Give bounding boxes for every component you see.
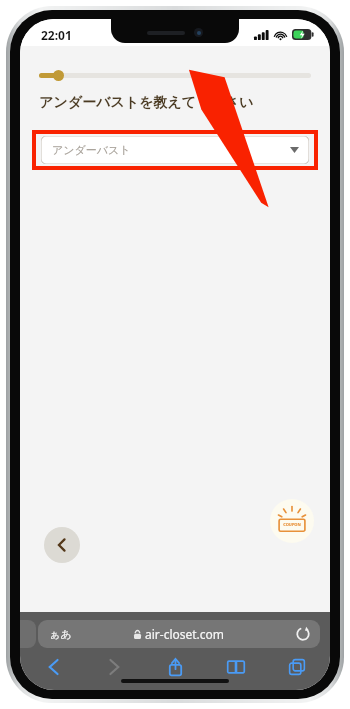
staticText: アンダーバストを教えてください <box>39 94 254 112</box>
button[interactable]: クーポン <box>270 499 314 543</box>
staticText: 22:01 <box>41 27 72 43</box>
staticText: COUPON <box>283 522 301 527</box>
button[interactable]: 進む <box>93 654 135 680</box>
button[interactable]: 共有 <box>154 654 196 680</box>
button[interactable]: 戻る <box>44 527 80 563</box>
button[interactable]: アンダーバスト <box>41 136 309 164</box>
button[interactable]: 再読み込み <box>295 626 311 642</box>
staticText: air-closet.com <box>145 626 225 642</box>
button[interactable]: ブックマーク <box>215 654 257 680</box>
staticText: アンダーバスト <box>52 143 131 157</box>
button[interactable]: 戻る <box>32 654 74 680</box>
button[interactable]: ぁあ <box>38 620 320 648</box>
button[interactable]: タブ <box>276 654 318 680</box>
staticText: ぁあ <box>49 627 72 641</box>
